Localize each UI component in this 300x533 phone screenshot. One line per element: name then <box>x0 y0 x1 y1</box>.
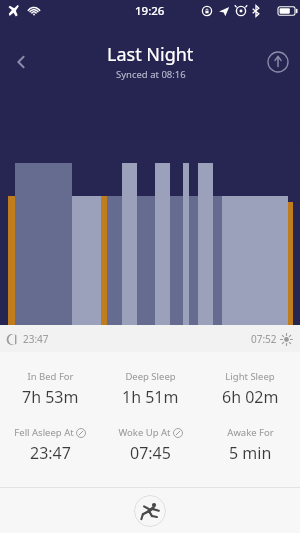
staticText: In Bed For <box>27 370 74 383</box>
staticText: Fell Asleep At <box>14 426 74 439</box>
staticText: 07:52 <box>251 332 277 346</box>
staticText: Awake For <box>227 426 274 439</box>
button[interactable]: Fell Asleep At <box>0 425 100 465</box>
button[interactable]: Back <box>0 40 44 84</box>
button[interactable]: Awake For <box>200 425 300 465</box>
staticText: 23:47 <box>30 442 71 464</box>
staticText: 23:47 <box>23 332 49 346</box>
button[interactable]: Share <box>256 40 300 84</box>
staticText: 1h 51m <box>122 386 179 408</box>
staticText: 07:45 <box>130 442 171 464</box>
button[interactable]: Light Sleep <box>200 369 300 409</box>
staticText: 7h 53m <box>22 386 79 408</box>
staticText: Woke Up At <box>118 426 171 439</box>
staticText: 6h 02m <box>222 386 279 408</box>
staticText: Light Sleep <box>225 370 275 383</box>
button[interactable]: In Bed For <box>0 369 100 409</box>
staticText: 19:26 <box>135 3 165 19</box>
button[interactable]: Woke Up At <box>100 425 200 465</box>
staticText: Deep Sleep <box>125 370 176 383</box>
staticText: 5 min <box>229 442 272 464</box>
staticText: Last Night <box>107 42 194 67</box>
button[interactable]: Activity <box>134 495 166 527</box>
staticText: Synced at 08:16 <box>116 68 186 81</box>
button[interactable]: Deep Sleep <box>100 369 200 409</box>
